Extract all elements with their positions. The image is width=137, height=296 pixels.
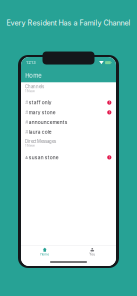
staticText: # (25, 100, 28, 105)
staticText: laura cole (29, 129, 52, 135)
button[interactable]: Home (21, 246, 68, 258)
staticText: Home (40, 252, 49, 256)
staticText: staff only (29, 100, 52, 105)
staticText: Direct Messages (25, 139, 56, 144)
staticText: 1 New (25, 143, 35, 148)
staticText: announcements (29, 119, 68, 125)
button[interactable]: susan stone (21, 152, 116, 162)
staticText: # (25, 109, 28, 115)
staticText: 1 (109, 155, 110, 159)
staticText: 1 New (25, 89, 35, 93)
button[interactable]: You (68, 246, 116, 258)
staticText: Every Resident Has a Family Channel (6, 19, 130, 27)
staticText: 1 (109, 110, 110, 114)
button[interactable]: # (21, 127, 116, 137)
staticText: # (25, 119, 28, 125)
staticText: Home (25, 72, 41, 79)
staticText: mary stone (29, 109, 56, 115)
button[interactable]: # (21, 98, 116, 107)
staticText: Channels (25, 84, 44, 89)
button[interactable]: # (21, 107, 116, 117)
staticText: 12:13 (26, 60, 35, 65)
staticText: susan stone (29, 154, 59, 160)
staticText: # (25, 129, 28, 135)
staticText: You (89, 252, 95, 256)
button[interactable]: # (21, 117, 116, 127)
staticText: 1 (109, 101, 110, 105)
